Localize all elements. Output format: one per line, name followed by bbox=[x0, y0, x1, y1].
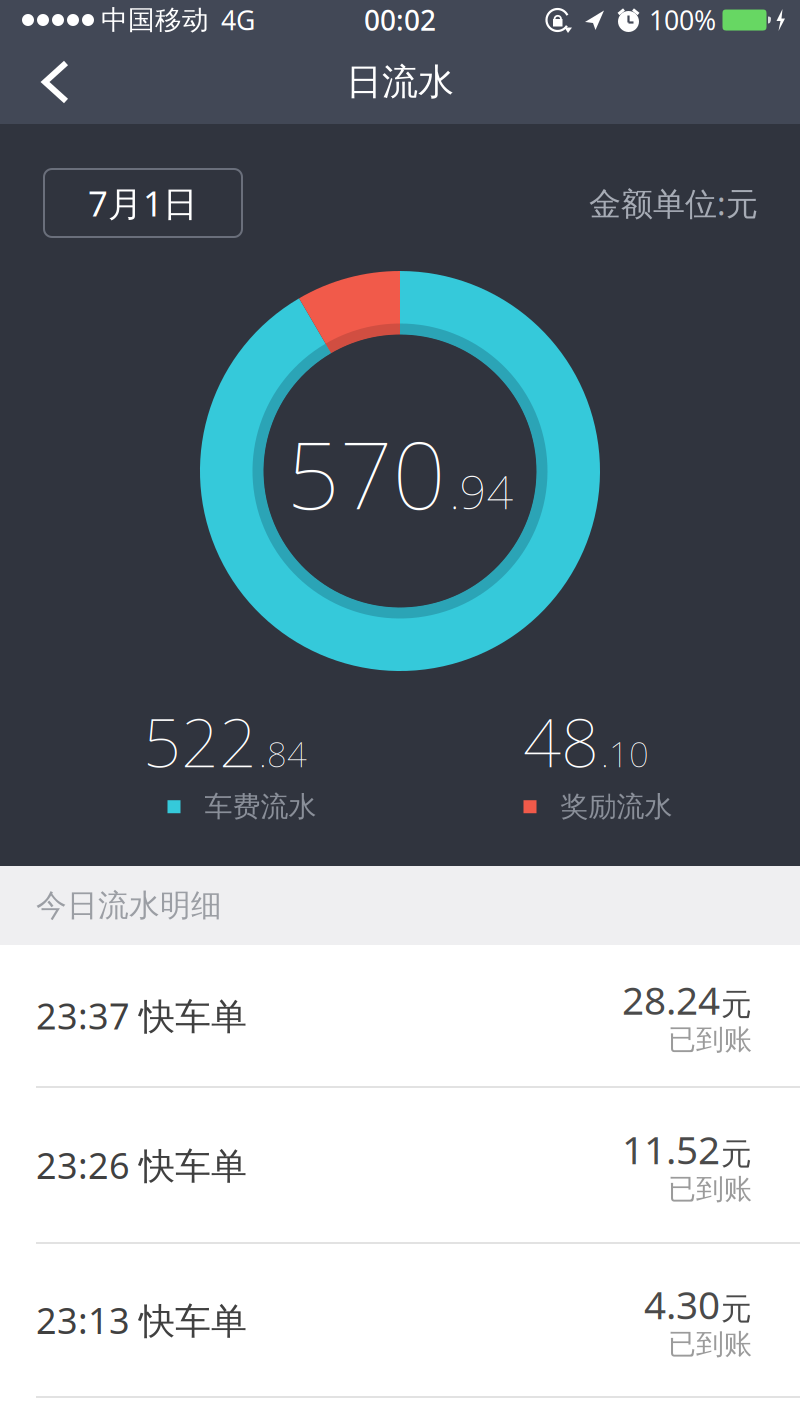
staticText: 522 bbox=[143, 697, 257, 785]
button[interactable]: 7月1日 bbox=[43, 168, 243, 238]
staticText: 中国移动 bbox=[101, 4, 209, 36]
button[interactable]: 23:13 快车单 bbox=[0, 1244, 800, 1398]
staticText: 570 bbox=[286, 411, 445, 535]
staticText: 11.52 bbox=[622, 1124, 720, 1175]
staticText: 奖励流水 bbox=[560, 789, 672, 824]
staticText: 已到账 bbox=[668, 1327, 752, 1361]
staticText: 元 bbox=[721, 1290, 752, 1328]
staticText: .10 bbox=[601, 731, 649, 777]
staticText: 今日流水明细 bbox=[36, 887, 222, 924]
staticText: 车费流水 bbox=[204, 789, 316, 824]
staticText: 28.24 bbox=[622, 974, 720, 1025]
staticText: .94 bbox=[449, 460, 513, 522]
staticText: 48 bbox=[523, 697, 599, 785]
button[interactable]: 23:26 快车单 bbox=[0, 1088, 800, 1244]
staticText: 已到账 bbox=[668, 1172, 752, 1206]
staticText: 100% bbox=[649, 2, 716, 38]
staticText: 23:13 快车单 bbox=[36, 1296, 247, 1344]
staticText: .84 bbox=[259, 731, 307, 777]
staticText: 4G bbox=[221, 2, 255, 38]
staticText: 7月1日 bbox=[88, 180, 198, 226]
staticText: 元 bbox=[721, 1135, 752, 1173]
staticText: 4.30 bbox=[644, 1279, 720, 1330]
staticText: 已到账 bbox=[668, 1022, 752, 1057]
staticText: 23:26 快车单 bbox=[36, 1141, 247, 1189]
staticText: 日流水 bbox=[346, 60, 454, 104]
staticText: 元 bbox=[721, 986, 752, 1023]
staticText: 23:37 快车单 bbox=[36, 992, 247, 1039]
staticText: 金额单位:元 bbox=[589, 182, 758, 224]
button[interactable]: 23:37 快车单 bbox=[0, 945, 800, 1088]
button[interactable]: Back bbox=[0, 40, 72, 124]
staticText: 00:02 bbox=[364, 1, 436, 39]
